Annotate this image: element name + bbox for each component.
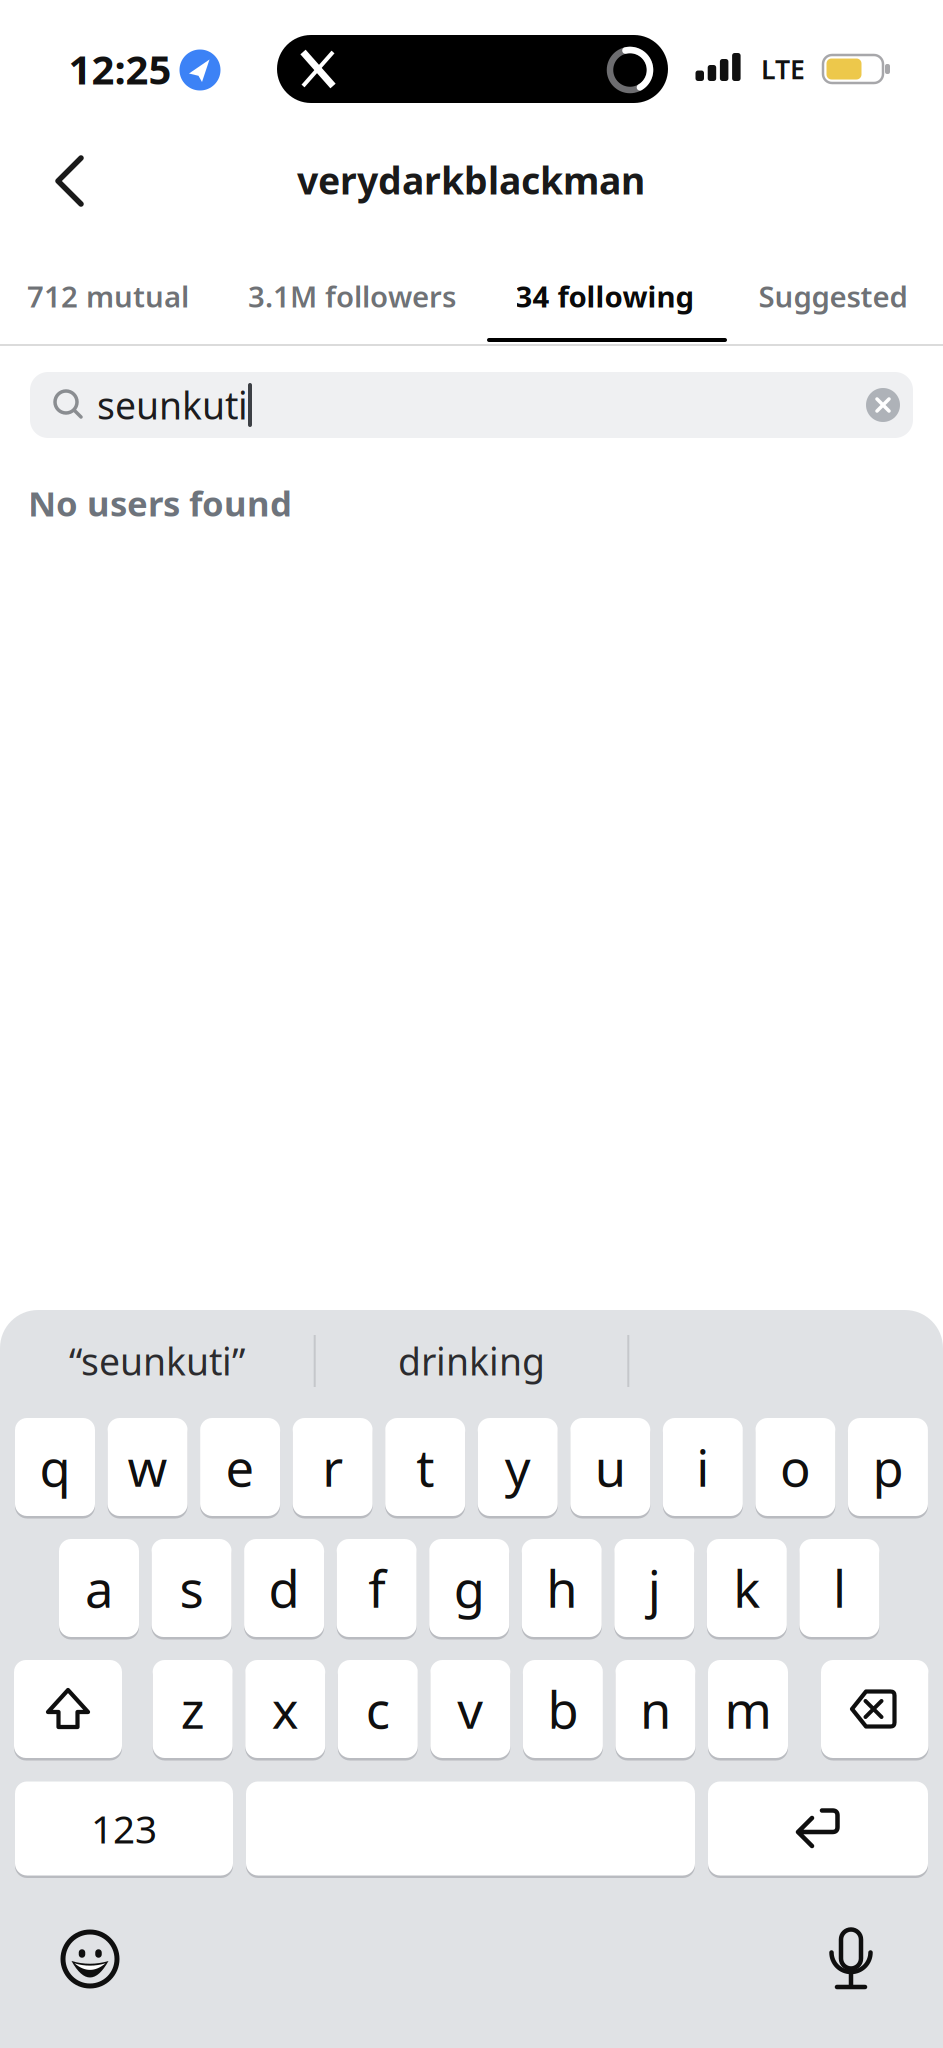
button[interactable]: drinking: [321, 1321, 621, 1401]
button[interactable]: l: [799, 1539, 879, 1637]
staticText: a: [85, 1554, 113, 1622]
staticText: v: [457, 1675, 483, 1743]
button[interactable]: r: [293, 1418, 373, 1516]
button[interactable]: 712 mutual: [0, 250, 215, 342]
staticText: n: [640, 1675, 671, 1743]
staticText: b: [547, 1675, 578, 1743]
button[interactable]: m: [708, 1660, 788, 1758]
button[interactable]: n: [615, 1660, 695, 1758]
staticText: i: [696, 1433, 709, 1501]
staticText: e: [226, 1433, 255, 1501]
button[interactable]: u: [570, 1418, 650, 1516]
staticText: h: [546, 1554, 577, 1622]
staticText: o: [780, 1433, 811, 1501]
staticText: LTE: [761, 51, 805, 87]
staticText: 3.1M followers: [248, 276, 456, 315]
staticText: drinking: [398, 1336, 545, 1386]
staticText: d: [269, 1554, 300, 1622]
button[interactable]: Search: [30, 372, 913, 438]
staticText: s: [180, 1554, 204, 1622]
button[interactable]: Numbers: [15, 1781, 233, 1875]
button[interactable]: Shift: [14, 1660, 122, 1758]
button[interactable]: i: [663, 1418, 743, 1516]
button[interactable]: “seunkuti”: [7, 1321, 307, 1401]
staticText: m: [724, 1675, 771, 1743]
button[interactable]: x: [245, 1660, 325, 1758]
staticText: 712 mutual: [27, 276, 189, 315]
button[interactable]: k: [707, 1539, 787, 1637]
staticText: seunkuti: [97, 380, 248, 430]
button[interactable]: c: [338, 1660, 418, 1758]
button[interactable]: Suggested: [725, 250, 940, 342]
button[interactable]: e: [200, 1418, 280, 1516]
button[interactable]: space: [246, 1781, 695, 1875]
staticText: 12:25: [68, 42, 171, 95]
button[interactable]: w: [108, 1418, 188, 1516]
staticText: x: [272, 1675, 299, 1743]
button[interactable]: y: [478, 1418, 558, 1516]
button[interactable]: v: [430, 1660, 510, 1758]
button[interactable]: Delete: [821, 1660, 928, 1758]
staticText: 34 following: [515, 276, 694, 315]
staticText: c: [366, 1675, 390, 1743]
button[interactable]: 34 following: [497, 250, 712, 342]
staticText: z: [181, 1675, 205, 1743]
staticText: g: [454, 1554, 485, 1622]
staticText: 123: [91, 1803, 157, 1854]
staticText: “seunkuti”: [69, 1336, 245, 1386]
staticText: f: [368, 1554, 385, 1622]
staticText: u: [595, 1433, 626, 1501]
staticText: Suggested: [758, 276, 907, 315]
staticText: y: [505, 1433, 531, 1501]
button[interactable]: s: [152, 1539, 232, 1637]
staticText: verydarkblackman: [297, 155, 645, 205]
button[interactable]: z: [153, 1660, 233, 1758]
staticText: t: [416, 1433, 434, 1501]
button[interactable]: j: [614, 1539, 694, 1637]
staticText: j: [648, 1554, 661, 1622]
button[interactable]: Clear search text: [866, 388, 900, 422]
button[interactable]: p: [848, 1418, 928, 1516]
button[interactable]: b: [523, 1660, 603, 1758]
button[interactable]: o: [755, 1418, 835, 1516]
button[interactable]: Dictate: [822, 1921, 878, 1993]
staticText: q: [39, 1433, 70, 1501]
button[interactable]: g: [429, 1539, 509, 1637]
button[interactable]: a: [59, 1539, 139, 1637]
staticText: No users found: [28, 480, 292, 526]
button[interactable]: 3.1M followers: [244, 250, 459, 342]
staticText: p: [872, 1433, 903, 1501]
button[interactable]: q: [15, 1418, 95, 1516]
button[interactable]: Back: [42, 141, 102, 221]
button[interactable]: Emoji: [58, 1927, 122, 1991]
button[interactable]: h: [522, 1539, 602, 1637]
staticText: r: [322, 1433, 343, 1501]
button[interactable]: t: [385, 1418, 465, 1516]
button[interactable]: f: [337, 1539, 417, 1637]
button[interactable]: Return: [708, 1781, 928, 1875]
staticText: k: [733, 1554, 760, 1622]
button[interactable]: d: [244, 1539, 324, 1637]
staticText: l: [833, 1554, 846, 1622]
staticText: w: [128, 1433, 168, 1501]
